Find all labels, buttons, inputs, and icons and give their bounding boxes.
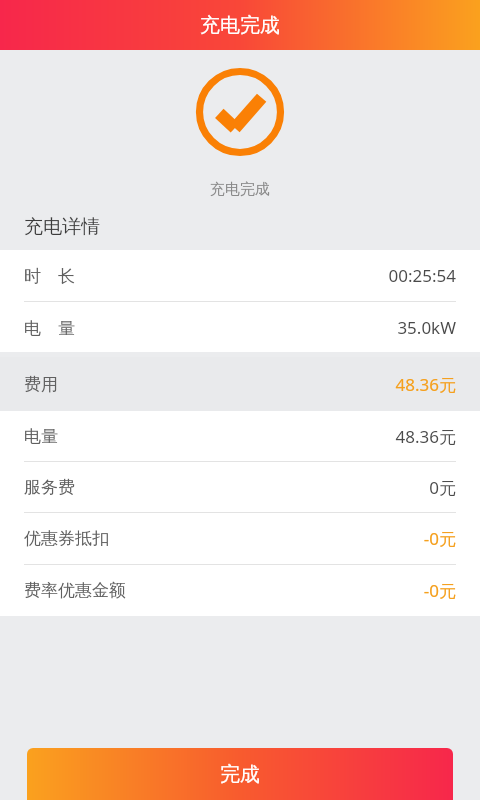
staticText: 充电完成 [210,180,270,199]
staticText: 充电完成 [200,13,280,38]
staticText: 48.36元 [395,425,456,448]
staticText: 35.0kW [397,316,456,339]
staticText: 时 长 [24,264,75,287]
button[interactable]: 电 量 [0,302,480,352]
staticText: 优惠券抵扣 [24,528,109,549]
staticText: 电 量 [24,316,75,339]
button[interactable]: 电量 [0,411,480,461]
staticText: 完成 [220,762,260,787]
staticText: 0元 [429,476,456,499]
button[interactable]: 费用 [0,357,480,411]
button[interactable]: 时 长 [0,250,480,301]
staticText: 00:25:54 [388,264,456,287]
button[interactable]: 费率优惠金额 [0,565,480,616]
button[interactable]: 完成 [27,748,453,800]
staticText: 费率优惠金额 [24,580,126,601]
staticText: -0元 [423,579,456,602]
staticText: -0元 [423,527,456,550]
button[interactable]: 优惠券抵扣 [0,513,480,564]
staticText: 服务费 [24,477,75,498]
button[interactable]: 服务费 [0,462,480,512]
staticText: 电量 [24,426,58,447]
staticText: 充电详情 [24,215,100,239]
staticText: 48.36元 [395,373,456,396]
staticText: 费用 [24,374,58,395]
